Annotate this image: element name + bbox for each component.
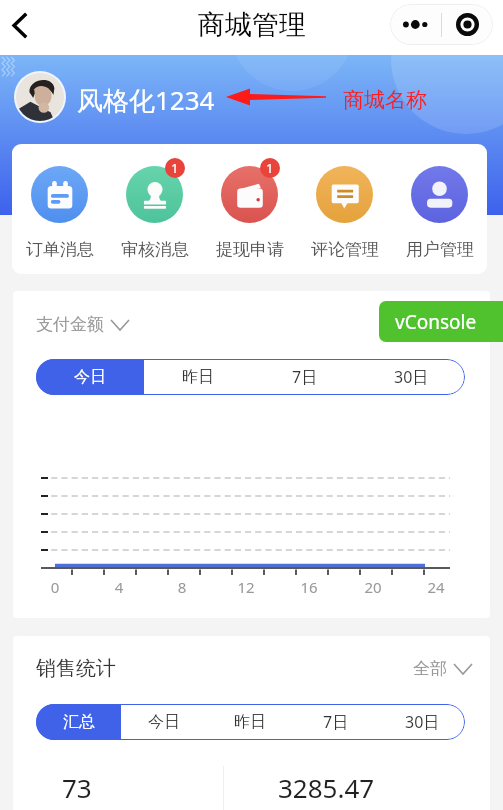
staticText: 7日 xyxy=(323,711,349,733)
button[interactable]: 评论管理 xyxy=(297,144,392,274)
staticText: 风格化1234 xyxy=(77,82,215,118)
button[interactable]: 订单消息 xyxy=(12,144,107,274)
button[interactable]: More xyxy=(390,4,441,45)
button[interactable]: 汇总 xyxy=(36,704,121,740)
button[interactable]: 用户管理 xyxy=(392,144,487,274)
staticText: 今日 xyxy=(148,712,180,732)
staticText: 12 xyxy=(228,577,264,597)
staticText: 30日 xyxy=(405,711,440,733)
button[interactable]: 7日 xyxy=(293,704,379,740)
staticText: 订单消息 xyxy=(26,239,94,260)
button[interactable]: 1 xyxy=(202,144,297,274)
staticText: 20 xyxy=(355,577,391,597)
button[interactable]: 今日 xyxy=(121,704,207,740)
button[interactable]: 今日 xyxy=(36,359,144,395)
staticText: vConsole xyxy=(395,309,477,335)
staticText: 24 xyxy=(418,577,454,597)
staticText: 73 xyxy=(62,770,92,805)
staticText: 昨日 xyxy=(234,712,266,732)
staticText: 今日 xyxy=(74,367,106,387)
button[interactable]: Close xyxy=(442,4,493,45)
staticText: 1 xyxy=(171,159,179,177)
staticText: 商城管理 xyxy=(198,8,306,42)
button[interactable]: 支付金额 xyxy=(36,314,129,335)
button[interactable]: vConsole xyxy=(379,301,503,342)
staticText: 销售统计 xyxy=(36,656,116,681)
button[interactable]: 昨日 xyxy=(207,704,293,740)
staticText: 支付金额 xyxy=(36,314,104,335)
staticText: 提现申请 xyxy=(216,239,284,260)
button[interactable]: 1 xyxy=(107,144,202,274)
staticText: 8 xyxy=(164,577,200,597)
staticText: 3285.47 xyxy=(278,770,375,805)
button[interactable]: Back xyxy=(0,5,39,45)
staticText: 审核消息 xyxy=(121,239,189,260)
button[interactable]: 昨日 xyxy=(144,359,251,395)
button[interactable]: Avatar xyxy=(14,71,66,123)
button[interactable]: 全部 xyxy=(413,658,472,679)
button[interactable]: 30日 xyxy=(379,704,465,740)
staticText: 0 xyxy=(37,577,73,597)
staticText: 30日 xyxy=(394,366,429,388)
staticText: 全部 xyxy=(413,658,447,679)
button[interactable]: 30日 xyxy=(358,359,465,395)
staticText: 1 xyxy=(266,159,274,177)
staticText: 16 xyxy=(291,577,327,597)
staticText: 汇总 xyxy=(63,712,95,732)
staticText: 7日 xyxy=(292,366,318,388)
staticText: 昨日 xyxy=(182,367,214,387)
button[interactable]: 7日 xyxy=(251,359,358,395)
staticText: 商城名称 xyxy=(343,87,427,113)
staticText: 用户管理 xyxy=(406,239,474,260)
staticText: 评论管理 xyxy=(311,239,379,260)
staticText: 4 xyxy=(101,577,137,597)
